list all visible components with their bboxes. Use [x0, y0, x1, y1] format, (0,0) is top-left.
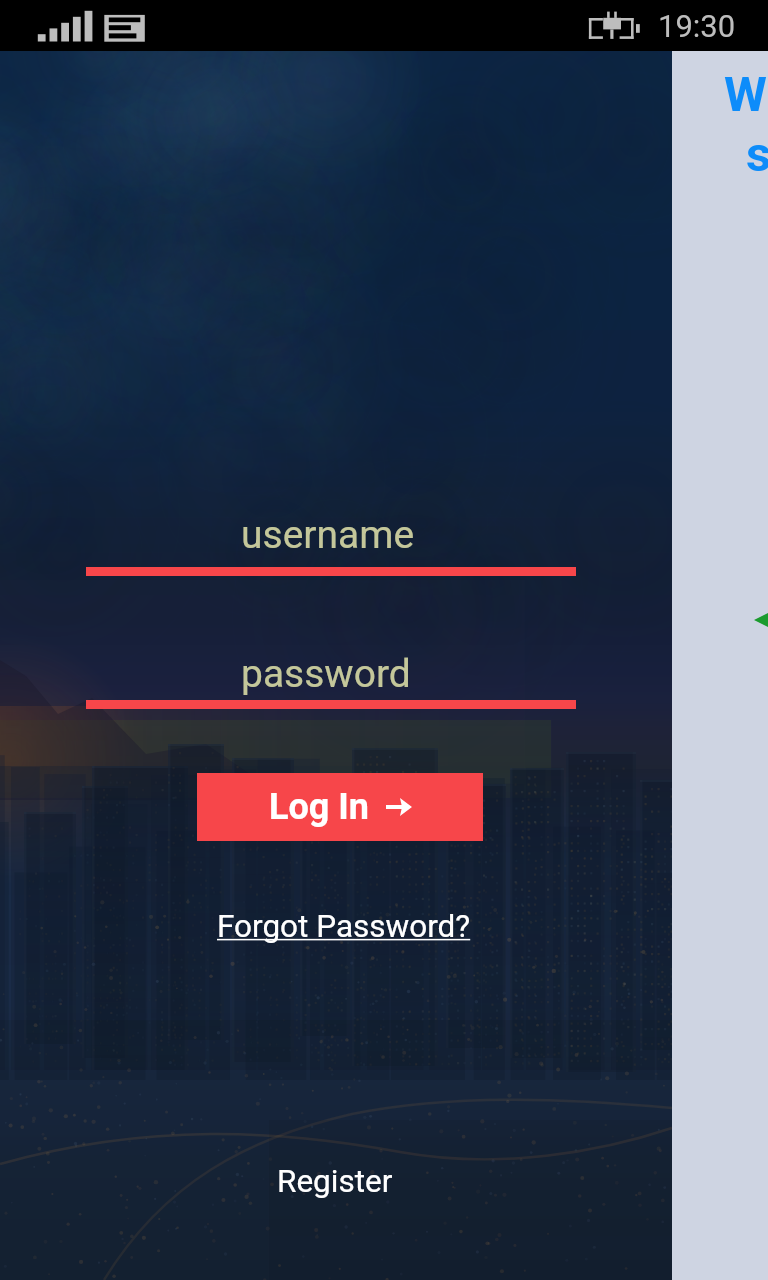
button[interactable]: password field	[86, 647, 576, 709]
staticText: s	[746, 126, 768, 183]
button[interactable]: username field	[86, 508, 576, 576]
staticText: Log In	[269, 786, 370, 828]
staticText: Register	[277, 1163, 393, 1200]
staticText: Forgot Password?	[217, 908, 471, 945]
button[interactable]: Register	[257, 1154, 413, 1208]
staticText: 19:30	[658, 8, 736, 44]
staticText: password	[241, 651, 411, 697]
button[interactable]: Log In	[197, 773, 483, 841]
button[interactable]: Forgot Password?	[211, 898, 477, 954]
staticText: username	[241, 512, 415, 558]
staticText: W	[724, 66, 767, 123]
